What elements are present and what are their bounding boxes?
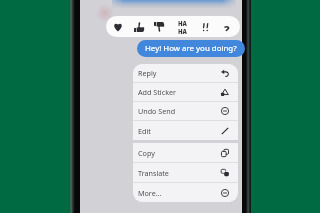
button[interactable]: Reply	[133, 64, 238, 82]
button[interactable]: Edit	[133, 121, 238, 140]
staticText: Reply	[138, 68, 157, 78]
staticText: HA	[178, 28, 187, 34]
button[interactable]: More...	[133, 183, 238, 202]
staticText: HA	[178, 20, 187, 28]
button[interactable]: Thumbs up	[130, 16, 148, 37]
button[interactable]: Exclamation	[196, 16, 214, 37]
button[interactable]: Thumbs down	[150, 16, 168, 37]
staticText: More...	[138, 188, 162, 198]
staticText: Copy	[138, 148, 155, 158]
button[interactable]: Undo Send	[133, 102, 238, 120]
staticText: Undo Send	[138, 106, 176, 116]
button[interactable]: Add Sticker	[133, 83, 238, 101]
staticText: Hey! How are you doing?	[145, 43, 237, 54]
button[interactable]: Translate	[133, 163, 238, 182]
staticText: Add Sticker	[138, 87, 177, 97]
button[interactable]: Question	[218, 16, 236, 37]
button[interactable]: Love	[109, 16, 127, 37]
button[interactable]: Hey! How are you doing?	[137, 40, 245, 57]
staticText: Translate	[138, 168, 169, 178]
staticText: Edit	[138, 126, 151, 136]
staticText: ?	[224, 22, 230, 32]
button[interactable]: Copy	[133, 143, 238, 162]
button[interactable]: Haha	[173, 16, 191, 37]
